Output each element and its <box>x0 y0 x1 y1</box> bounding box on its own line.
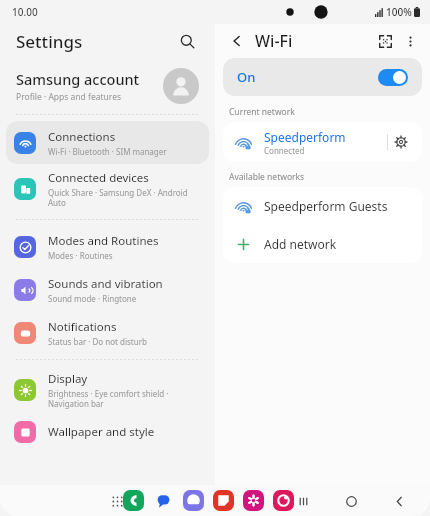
staticText: Sounds and vibration <box>48 276 163 292</box>
staticText: Wallpaper and style <box>48 424 155 440</box>
staticText: Quick Share · Samsung DeX · Android Auto <box>48 187 188 208</box>
button[interactable]: Samsung account <box>0 58 215 114</box>
staticText: On <box>237 68 256 86</box>
staticText: Modes · Routines <box>48 250 113 261</box>
button[interactable]: Recents <box>292 490 314 512</box>
button[interactable]: Home <box>340 490 362 512</box>
staticText: Sound mode · Ringtone <box>48 293 137 304</box>
button[interactable]: Sounds and vibration <box>6 268 209 311</box>
button[interactable]: Modes and Routines <box>6 225 209 268</box>
staticText: Connected devices <box>48 170 149 186</box>
button[interactable]: Speedperform <box>223 122 422 162</box>
button[interactable]: More options <box>398 29 422 53</box>
button[interactable]: Connections <box>6 121 209 164</box>
button[interactable]: Search <box>173 27 201 55</box>
staticText: Brightness · Eye comfort shield · Naviga… <box>48 388 169 409</box>
staticText: 10.00 <box>12 5 38 19</box>
button[interactable]: Display <box>6 365 209 415</box>
button[interactable]: Notifications <box>6 311 209 354</box>
staticText: Status bar · Do not disturb <box>48 336 147 347</box>
staticText: Available networks <box>229 171 305 183</box>
button[interactable]: Wallpaper and style <box>6 415 209 449</box>
staticText: Connected <box>264 145 305 156</box>
staticText: Samsung account <box>16 69 140 89</box>
staticText: Notifications <box>48 319 117 335</box>
button[interactable]: Gallery <box>243 490 264 511</box>
staticText: Wi-Fi · Bluetooth · SIM manager <box>48 146 167 157</box>
button[interactable]: Network settings <box>388 129 414 155</box>
button[interactable]: Messages <box>153 490 174 511</box>
button[interactable]: Internet <box>183 490 204 511</box>
staticText: Modes and Routines <box>48 233 159 249</box>
staticText: Speedperform <box>264 129 346 145</box>
staticText: Connections <box>48 129 116 145</box>
button[interactable]: Notes <box>213 490 234 511</box>
staticText: Add network <box>264 236 337 252</box>
button[interactable]: Add network <box>223 225 422 263</box>
button[interactable]: Scan QR code <box>372 28 398 54</box>
button[interactable]: Phone <box>123 490 144 511</box>
button[interactable]: Apps <box>105 489 129 513</box>
button[interactable]: On <box>223 58 422 96</box>
button[interactable]: Connected devices <box>6 164 209 214</box>
button[interactable]: Camera <box>273 490 294 511</box>
button[interactable]: Back <box>388 490 410 512</box>
button[interactable]: Back <box>225 29 249 53</box>
staticText: Display <box>48 371 88 387</box>
staticText: 100% <box>386 5 412 19</box>
staticText: Current network <box>229 106 295 118</box>
staticText: Profile · Apps and features <box>16 91 122 103</box>
staticText: Settings <box>16 30 83 53</box>
button[interactable]: Speedperform Guests <box>223 187 422 225</box>
staticText: Speedperform Guests <box>264 198 388 214</box>
staticText: Wi-Fi <box>255 30 293 52</box>
